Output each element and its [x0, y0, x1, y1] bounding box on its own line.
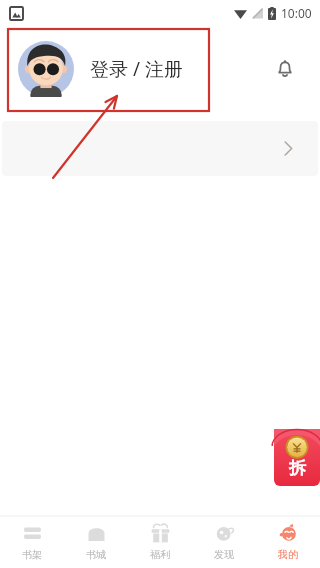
staticText: 我的 — [278, 548, 298, 561]
button[interactable]: 我的 — [256, 516, 320, 568]
button[interactable]: Notifications — [268, 52, 302, 86]
staticText: 拆 — [289, 458, 306, 479]
button[interactable]: 福利 — [128, 516, 192, 568]
button[interactable]: 登录 / 注册 — [18, 41, 183, 97]
staticText: 发现 — [214, 548, 234, 561]
staticText: 10:00 — [281, 5, 312, 21]
button[interactable] — [2, 121, 318, 176]
button[interactable]: 书城 — [64, 516, 128, 568]
button[interactable]: 发现 — [192, 516, 256, 568]
button[interactable]: 书架 — [0, 516, 64, 568]
staticText: 书架 — [22, 548, 42, 561]
staticText: 登录 / 注册 — [90, 56, 183, 82]
staticText: 福利 — [150, 548, 170, 561]
staticText: 书城 — [86, 548, 106, 561]
button[interactable]: Open red packet — [274, 429, 320, 486]
